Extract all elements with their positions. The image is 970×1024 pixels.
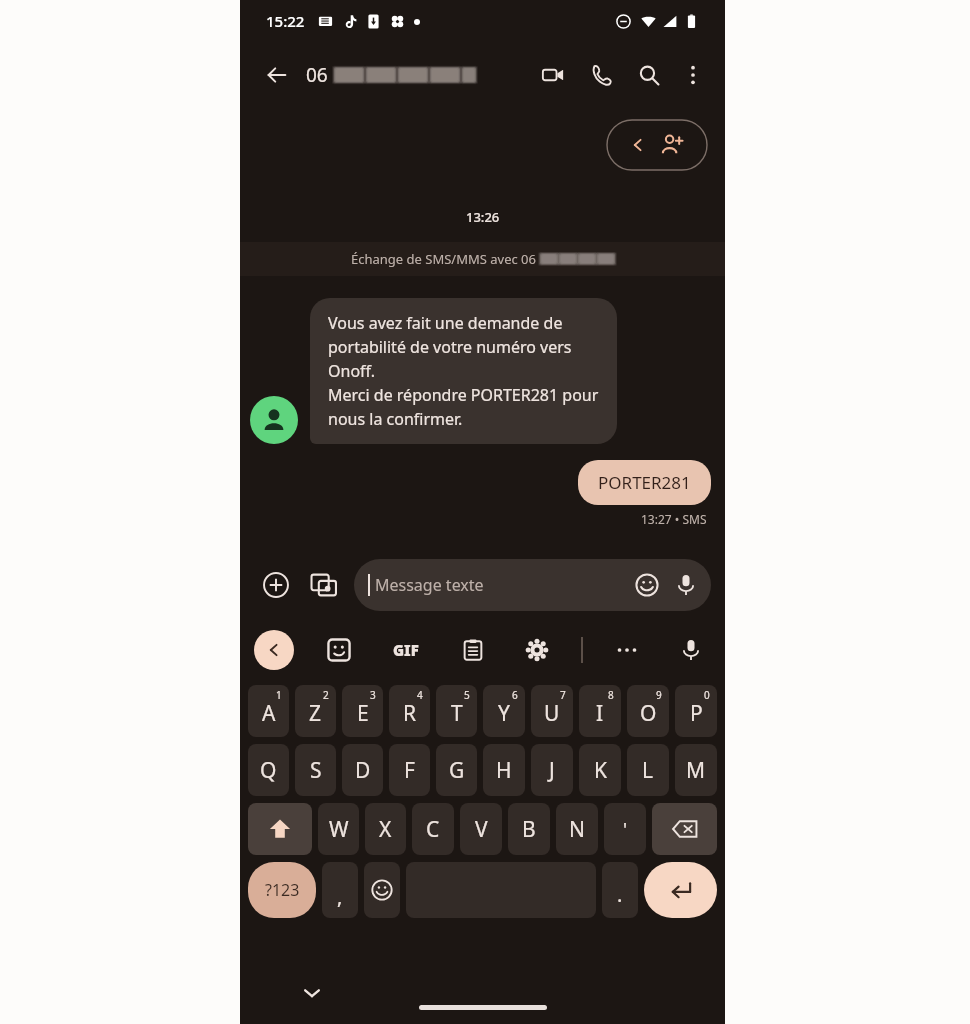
staticText: Échange de SMS/MMS avec 06 bbox=[351, 250, 536, 268]
staticText: N bbox=[569, 815, 585, 844]
staticText: T bbox=[451, 699, 463, 728]
button[interactable]: Emoji bbox=[364, 862, 400, 918]
button[interactable]: Y bbox=[483, 685, 525, 737]
staticText: PORTER281 bbox=[598, 471, 691, 494]
staticText: U bbox=[544, 699, 560, 728]
button[interactable]: L bbox=[627, 744, 669, 796]
staticText: ?123 bbox=[265, 879, 300, 901]
button[interactable]: X bbox=[365, 803, 406, 855]
staticText: 9 bbox=[656, 688, 662, 702]
staticText: , bbox=[337, 883, 343, 910]
button[interactable]: Stickers bbox=[319, 630, 359, 670]
button[interactable]: Message texte bbox=[354, 559, 711, 611]
staticText: E bbox=[357, 699, 369, 728]
button[interactable]: D bbox=[342, 744, 383, 796]
button[interactable]: Shift bbox=[248, 803, 312, 855]
staticText: V bbox=[475, 815, 488, 844]
button[interactable]: F bbox=[389, 744, 430, 796]
button[interactable]: Q bbox=[248, 744, 289, 796]
button[interactable]: S bbox=[295, 744, 336, 796]
button[interactable]: Vous avez fait une demande de portabilit… bbox=[310, 298, 617, 444]
staticText: D bbox=[355, 756, 371, 785]
staticText: M bbox=[686, 756, 706, 785]
staticText: 06 bbox=[306, 62, 328, 88]
button[interactable]: O bbox=[627, 685, 669, 737]
staticText: 4 bbox=[417, 688, 423, 702]
button[interactable] bbox=[250, 396, 298, 444]
staticText: . bbox=[617, 881, 623, 908]
staticText: Y bbox=[498, 699, 510, 728]
button[interactable]: GIF bbox=[384, 628, 428, 672]
staticText: 13:27 • SMS bbox=[641, 511, 707, 527]
button[interactable]: PORTER281 bbox=[578, 460, 711, 505]
button[interactable]: Call bbox=[581, 55, 621, 95]
staticText: W bbox=[329, 815, 349, 844]
staticText: 1 bbox=[276, 688, 282, 702]
staticText: B bbox=[522, 815, 536, 844]
button[interactable]: Hide keyboard bbox=[296, 977, 328, 1009]
staticText: ' bbox=[623, 817, 628, 842]
button[interactable]: More bbox=[607, 630, 647, 670]
button[interactable]: Settings bbox=[517, 630, 557, 670]
staticText: P bbox=[690, 699, 703, 728]
button[interactable]: Voice input bbox=[671, 630, 711, 670]
button[interactable]: Z bbox=[295, 685, 336, 737]
staticText: G bbox=[449, 756, 465, 785]
button[interactable]: Add contact bbox=[607, 120, 707, 170]
button[interactable]: J bbox=[531, 744, 573, 796]
button[interactable]: W bbox=[318, 803, 359, 855]
button[interactable]: I bbox=[579, 685, 621, 737]
button[interactable]: G bbox=[436, 744, 477, 796]
button[interactable]: Video call bbox=[533, 55, 573, 95]
staticText: Q bbox=[260, 756, 277, 785]
staticText: O bbox=[640, 699, 657, 728]
staticText: 3 bbox=[370, 688, 376, 702]
button[interactable]: More options bbox=[673, 55, 713, 95]
staticText: C bbox=[426, 815, 440, 844]
staticText: K bbox=[594, 756, 607, 785]
button[interactable]: Enter bbox=[644, 862, 717, 918]
staticText: 2 bbox=[323, 688, 329, 702]
button[interactable]: V bbox=[460, 803, 502, 855]
button[interactable]: Clipboard bbox=[453, 630, 493, 670]
button[interactable]: U bbox=[531, 685, 573, 737]
button[interactable]: Add attachment bbox=[254, 563, 298, 607]
staticText: 6 bbox=[512, 688, 518, 702]
button[interactable]: M bbox=[675, 744, 717, 796]
staticText: GIF bbox=[393, 640, 419, 660]
button[interactable]: P bbox=[675, 685, 717, 737]
button[interactable]: Gallery bbox=[302, 563, 346, 607]
button[interactable]: N bbox=[556, 803, 598, 855]
staticText: I bbox=[596, 699, 604, 728]
staticText: S bbox=[310, 756, 322, 785]
button[interactable]: T bbox=[436, 685, 477, 737]
button[interactable]: Expand bbox=[254, 630, 294, 670]
staticText: A bbox=[262, 699, 276, 728]
staticText: H bbox=[496, 756, 512, 785]
button[interactable]: C bbox=[412, 803, 454, 855]
staticText: 0 bbox=[704, 688, 710, 702]
staticText: Vous avez fait une demande de portabilit… bbox=[328, 312, 599, 430]
staticText: 15:22 bbox=[266, 11, 305, 31]
button[interactable]: A bbox=[248, 685, 289, 737]
button[interactable]: Back bbox=[258, 56, 296, 94]
button[interactable]: . bbox=[602, 862, 638, 918]
button[interactable]: ?123 bbox=[248, 862, 316, 918]
button[interactable]: H bbox=[483, 744, 525, 796]
button[interactable]: , bbox=[322, 862, 358, 918]
staticText: X bbox=[379, 815, 392, 844]
button[interactable]: B bbox=[508, 803, 550, 855]
button[interactable]: Search bbox=[629, 55, 669, 95]
button[interactable]: ' bbox=[604, 803, 646, 855]
button[interactable]: Backspace bbox=[652, 803, 717, 855]
staticText: 7 bbox=[560, 688, 566, 702]
staticText: 13:26 bbox=[466, 208, 500, 226]
staticText: R bbox=[403, 699, 417, 728]
staticText: J bbox=[549, 756, 555, 785]
button[interactable]: E bbox=[342, 685, 383, 737]
staticText: Message texte bbox=[375, 574, 484, 596]
staticText: Z bbox=[309, 699, 322, 728]
button[interactable]: K bbox=[579, 744, 621, 796]
button[interactable]: R bbox=[389, 685, 430, 737]
